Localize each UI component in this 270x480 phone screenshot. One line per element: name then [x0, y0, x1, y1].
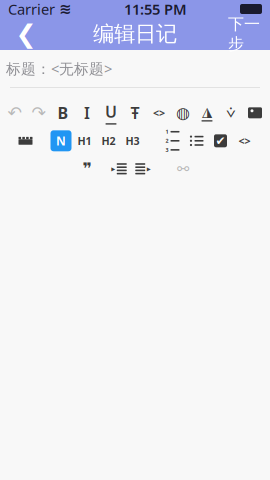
button[interactable]: Normal text	[50, 130, 71, 151]
staticText: 1	[165, 128, 168, 135]
button[interactable]: Clear formatting	[220, 102, 242, 124]
button[interactable]: Blockquote	[76, 158, 98, 180]
staticText: Ŧ	[130, 102, 139, 123]
button[interactable]: Heading 1	[73, 130, 95, 152]
staticText: ✔	[215, 134, 225, 148]
staticText: 11:55 PM	[124, 0, 187, 19]
button[interactable]: Code block	[233, 130, 255, 152]
staticText: B	[57, 102, 68, 123]
staticText: U	[105, 101, 117, 122]
button[interactable]: Underline	[100, 102, 122, 124]
button[interactable]: Redo	[28, 102, 50, 124]
staticText: ▸	[147, 164, 151, 173]
staticText: ◮	[202, 104, 212, 119]
staticText: H2	[101, 134, 115, 148]
staticText: ⩒	[226, 105, 236, 121]
staticText: Carrier	[8, 0, 55, 19]
button[interactable]: Inline code	[148, 102, 170, 124]
staticText: 2	[165, 137, 168, 144]
staticText: 下一步	[228, 14, 260, 54]
staticText: N	[56, 133, 66, 149]
staticText: 标题：<无标题>	[6, 59, 112, 78]
staticText: H3	[125, 134, 139, 148]
button[interactable]: Insert link	[172, 158, 194, 180]
button[interactable]: Undo	[4, 102, 26, 124]
button[interactable]: Back	[4, 18, 48, 50]
staticText: ⚯	[177, 160, 189, 177]
button[interactable]: Text color	[172, 102, 194, 124]
button[interactable]: Insert image	[244, 102, 266, 124]
button[interactable]: 下一步	[222, 18, 266, 50]
staticText: <>	[153, 106, 165, 120]
button[interactable]: Italic	[76, 102, 98, 124]
staticText: 编辑日记	[93, 21, 177, 47]
button[interactable]: Strikethrough	[124, 102, 146, 124]
button[interactable]: Highlight color	[196, 102, 218, 124]
staticText: I	[84, 102, 90, 123]
staticText: ▸	[111, 164, 115, 173]
button[interactable]: Heading 3	[121, 130, 143, 152]
staticText: ↶	[7, 103, 22, 123]
staticText: ◍	[176, 104, 190, 122]
staticText: 3	[165, 146, 168, 153]
staticText: ≋	[59, 1, 71, 17]
button[interactable]: Indent	[108, 158, 130, 180]
staticText: ↷	[31, 103, 46, 123]
staticText: ❮	[15, 20, 36, 48]
staticText: <>	[238, 134, 250, 148]
staticText: H1	[77, 134, 91, 148]
staticText: ❞	[82, 160, 91, 178]
button[interactable]: Insert video	[14, 130, 36, 152]
button[interactable]: Bulleted list	[185, 130, 207, 152]
button[interactable]: Outdent	[132, 158, 154, 180]
button[interactable]: Heading 2	[97, 130, 119, 152]
button[interactable]: Checklist	[209, 130, 231, 152]
button[interactable]: Bold	[52, 102, 74, 124]
button[interactable]: Numbered list	[161, 130, 183, 152]
